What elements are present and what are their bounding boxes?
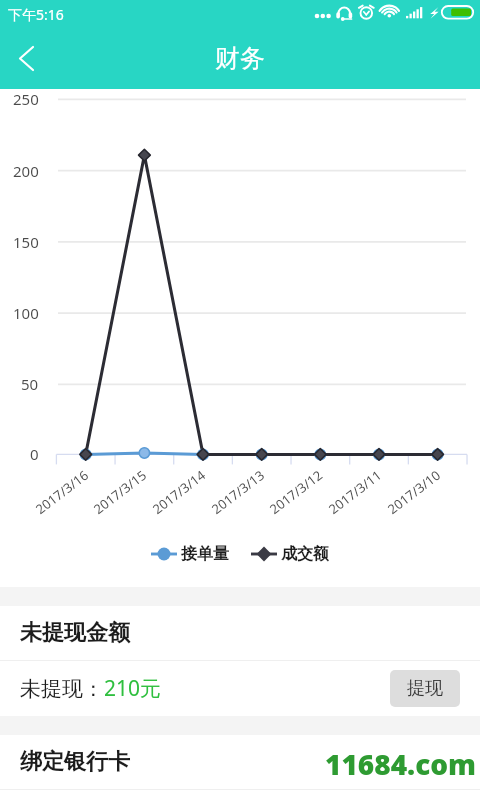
staticText: 2017/3/15 <box>90 466 150 518</box>
staticText: 2017/3/10 <box>384 466 444 518</box>
staticText: 未提现： <box>20 676 104 702</box>
staticText: 11684.com <box>325 745 477 783</box>
button[interactable]: 绑定银行卡 <box>0 735 480 789</box>
button[interactable]: 提现 <box>390 670 460 707</box>
staticText: 未提现金额 <box>20 619 130 647</box>
staticText: 2017/3/16 <box>32 466 92 518</box>
staticText: 200 <box>13 161 39 181</box>
staticText: 成交额 <box>281 544 329 564</box>
staticText: 250 <box>13 89 39 109</box>
button[interactable]: 未提现金额 <box>0 606 480 660</box>
staticText: 50 <box>21 374 39 394</box>
staticText: 0 <box>30 444 39 464</box>
staticText: 接单量 <box>181 544 229 564</box>
staticText: 下午5:16 <box>8 5 64 24</box>
staticText: 绑定银行卡 <box>20 748 130 776</box>
staticText: 财务 <box>215 43 265 74</box>
staticText: 150 <box>13 232 39 252</box>
staticText: 100 <box>13 303 39 323</box>
staticText: 2017/3/14 <box>149 466 209 518</box>
staticText: 2017/3/12 <box>266 466 326 518</box>
button[interactable]: Back <box>0 32 52 84</box>
staticText: 提现 <box>407 677 443 700</box>
staticText: 210元 <box>104 674 162 703</box>
staticText: 2017/3/13 <box>208 466 268 518</box>
staticText: 2017/3/11 <box>325 466 385 518</box>
